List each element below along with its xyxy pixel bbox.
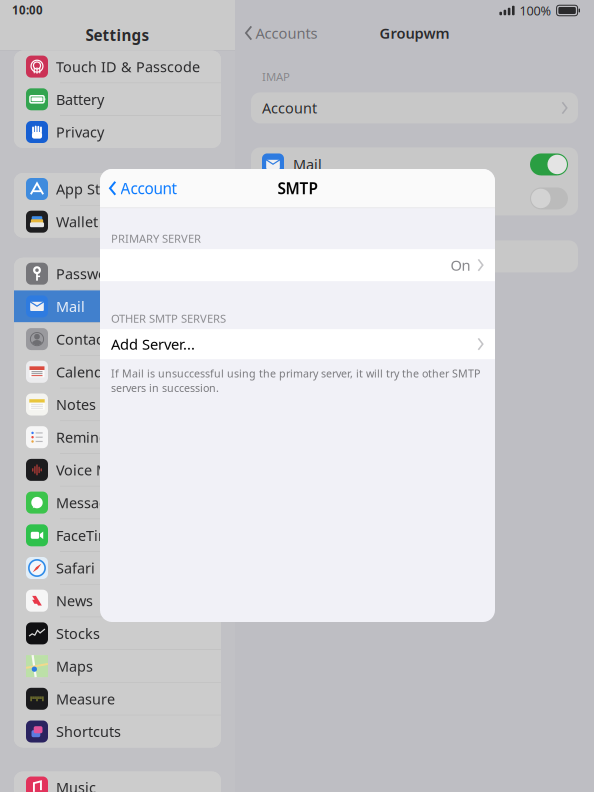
staticText: OTHER SMTP SERVERS	[111, 311, 226, 326]
staticText: Notes	[56, 395, 96, 414]
button[interactable]: News	[14, 585, 221, 617]
staticText: If Mail is unsuccessful using the primar…	[111, 366, 480, 395]
button[interactable]: App Store	[14, 173, 221, 205]
button[interactable]: Account	[100, 172, 178, 205]
staticText: 100%	[520, 2, 552, 19]
button[interactable]: Shortcuts	[14, 715, 221, 747]
button[interactable]: Passwords	[14, 258, 221, 290]
staticText: Settings	[85, 25, 149, 45]
staticText: 10:00	[12, 2, 43, 18]
staticText: FaceTime	[56, 525, 119, 545]
button[interactable]: Contacts	[14, 323, 221, 355]
button[interactable]: Mail	[14, 290, 221, 322]
button[interactable]: Privacy	[14, 116, 221, 148]
staticText: SMTP	[277, 178, 317, 199]
staticText: Maps	[56, 656, 93, 676]
staticText: Mail	[56, 297, 85, 316]
staticText: Shortcuts	[56, 722, 121, 741]
staticText: Measure	[56, 689, 115, 709]
staticText: Safari	[56, 558, 95, 578]
staticText: IMAP	[262, 69, 290, 84]
staticText: Voice Memos	[56, 460, 146, 480]
staticText: App Store	[56, 179, 123, 199]
staticText: Privacy	[56, 122, 104, 142]
staticText: Stocks	[56, 624, 100, 643]
button[interactable]: Accounts	[235, 18, 318, 48]
staticText: Calendar	[56, 362, 117, 382]
staticText: Notes	[293, 189, 333, 208]
staticText: Account	[262, 98, 317, 118]
button[interactable]: Stocks	[14, 617, 221, 649]
button[interactable]: FaceTime	[14, 519, 221, 551]
button[interactable]: On	[100, 249, 495, 281]
button[interactable]: Voice Memos	[14, 454, 221, 486]
staticText: Account	[121, 178, 178, 199]
staticText: Messages	[56, 493, 123, 512]
button[interactable]: Measure	[14, 683, 221, 715]
staticText: On	[450, 255, 470, 275]
button[interactable]: Calendar	[14, 356, 221, 388]
staticText: Add Server...	[111, 334, 195, 354]
button[interactable]: Reminders	[14, 421, 221, 453]
button[interactable]: Music	[14, 771, 221, 792]
staticText: Accounts	[256, 23, 318, 43]
staticText: News	[56, 591, 93, 610]
staticText: Touch ID & Passcode	[56, 57, 200, 76]
staticText: Groupwm	[379, 23, 449, 43]
button[interactable]: Messages	[14, 487, 221, 519]
staticText: Reminders	[56, 427, 129, 447]
button[interactable]: Safari	[14, 552, 221, 584]
button[interactable]: Battery	[14, 83, 221, 115]
button[interactable]: Add Server...	[100, 329, 495, 359]
staticText: Mail	[293, 155, 322, 174]
button[interactable]: Maps	[14, 650, 221, 682]
staticText: PRIMARY SERVER	[111, 231, 201, 246]
button[interactable]: Account	[251, 92, 578, 123]
staticText: Music	[56, 778, 96, 792]
button[interactable]: Wallet & Apple Pay	[14, 206, 221, 238]
staticText: Wallet & Apple Pay	[56, 212, 184, 231]
button[interactable]: Touch ID & Passcode	[14, 51, 221, 83]
button[interactable]: Notes	[14, 388, 221, 420]
staticText: Contacts	[56, 329, 115, 349]
staticText: Passwords	[56, 264, 129, 283]
staticText: Battery	[56, 89, 104, 109]
